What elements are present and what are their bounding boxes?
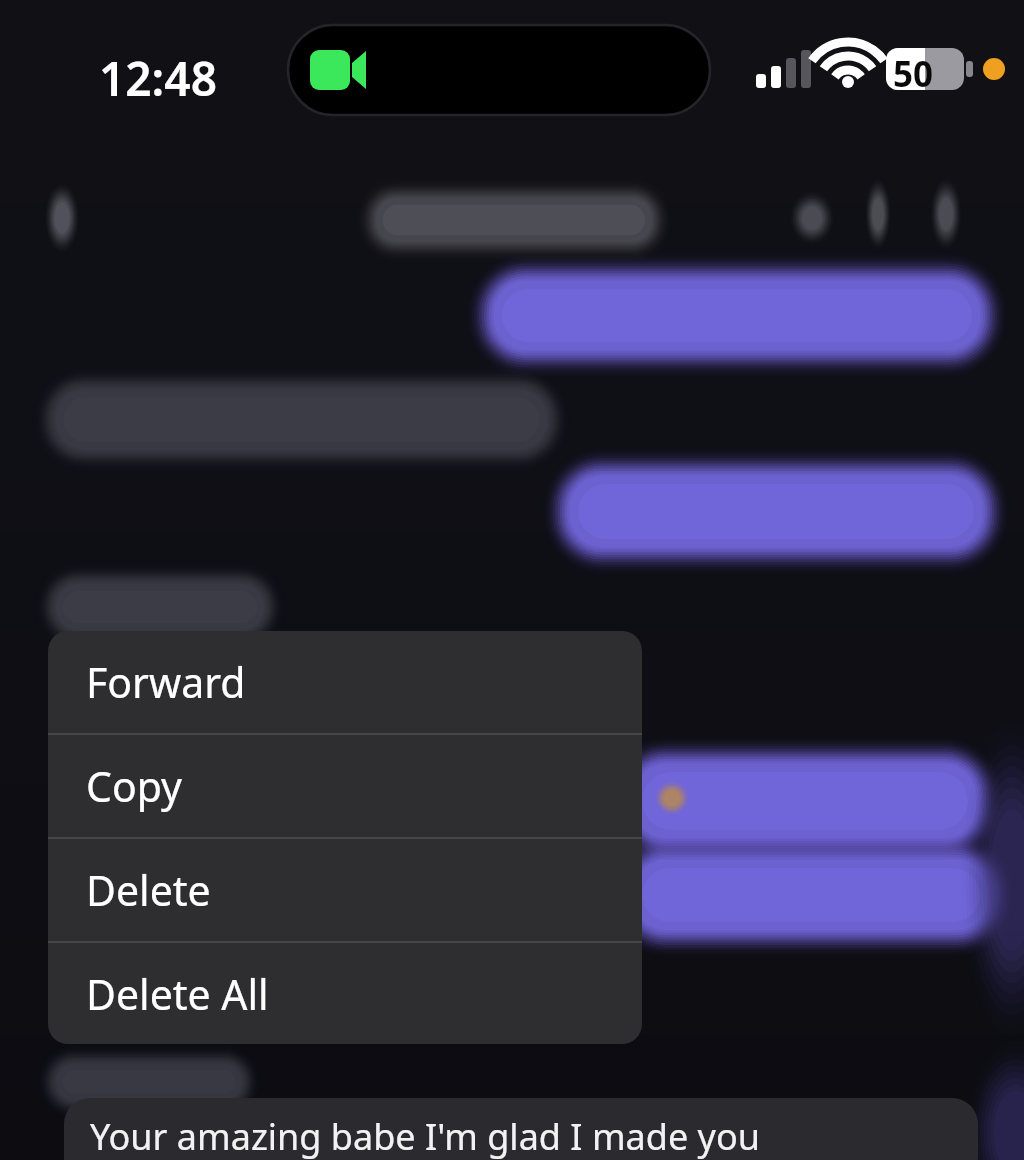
button[interactable]: Forward: [48, 631, 642, 733]
staticText: 12:48: [99, 47, 217, 110]
staticText: Delete: [86, 862, 211, 918]
staticText: 50: [893, 50, 934, 98]
staticText: Your amazing babe I'm glad I made you: [90, 1112, 760, 1160]
button[interactable]: Your amazing babe I'm glad I made you: [64, 1098, 978, 1160]
button[interactable]: Copy: [48, 735, 642, 837]
button[interactable]: Delete All: [48, 943, 642, 1044]
button[interactable]: Delete: [48, 839, 642, 941]
staticText: Copy: [86, 758, 183, 814]
staticText: Delete All: [86, 966, 269, 1022]
staticText: Forward: [86, 654, 246, 710]
